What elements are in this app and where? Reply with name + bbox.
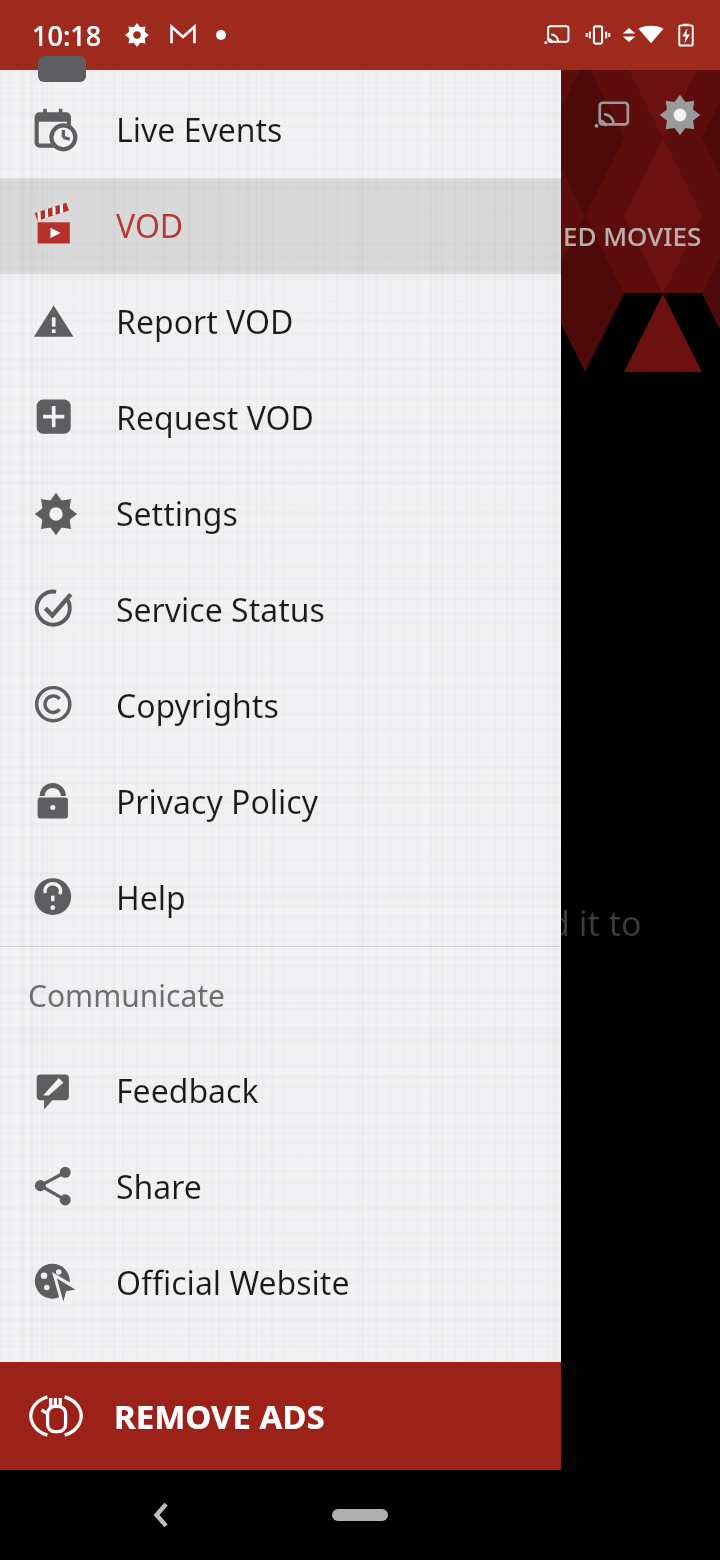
- staticText: Communicate: [28, 975, 226, 1016]
- staticText: Copyrights: [116, 684, 279, 728]
- button[interactable]: Settings: [0, 466, 561, 562]
- button[interactable]: Settings: [648, 79, 712, 151]
- staticText: Service Status: [116, 588, 325, 632]
- button[interactable]: Back: [92, 1470, 232, 1560]
- button[interactable]: Cast: [576, 79, 648, 151]
- button[interactable]: Privacy Policy: [0, 754, 561, 850]
- staticText: Official Website: [116, 1261, 350, 1305]
- staticText: Settings: [116, 492, 238, 536]
- button[interactable]: Share: [0, 1139, 561, 1235]
- staticText: Feedback: [116, 1069, 259, 1113]
- staticText: VOD: [116, 204, 184, 248]
- staticText: Live Events: [116, 108, 283, 152]
- staticText: REMOVE ADS: [114, 1394, 325, 1439]
- button[interactable]: Service Status: [0, 562, 561, 658]
- button[interactable]: Home: [0, 1470, 720, 1560]
- staticText: Help: [116, 876, 186, 920]
- staticText: Share: [116, 1165, 202, 1209]
- staticText: ED MOVIES: [563, 218, 702, 253]
- button[interactable]: Copyrights: [0, 658, 561, 754]
- button[interactable]: Help: [0, 850, 561, 946]
- button[interactable]: VOD: [0, 178, 561, 274]
- staticText: Request VOD: [116, 396, 314, 440]
- button[interactable]: Report VOD: [0, 274, 561, 370]
- staticText: d it to: [549, 900, 642, 946]
- button[interactable]: REMOVE ADS: [0, 1362, 561, 1470]
- staticText: 10:18: [32, 17, 102, 54]
- button[interactable]: Request VOD: [0, 370, 561, 466]
- staticText: Privacy Policy: [116, 780, 318, 824]
- staticText: Report VOD: [116, 300, 294, 344]
- button[interactable]: Live Events: [0, 82, 561, 178]
- button[interactable]: Official Website: [0, 1235, 561, 1331]
- button[interactable]: Feedback: [0, 1043, 561, 1139]
